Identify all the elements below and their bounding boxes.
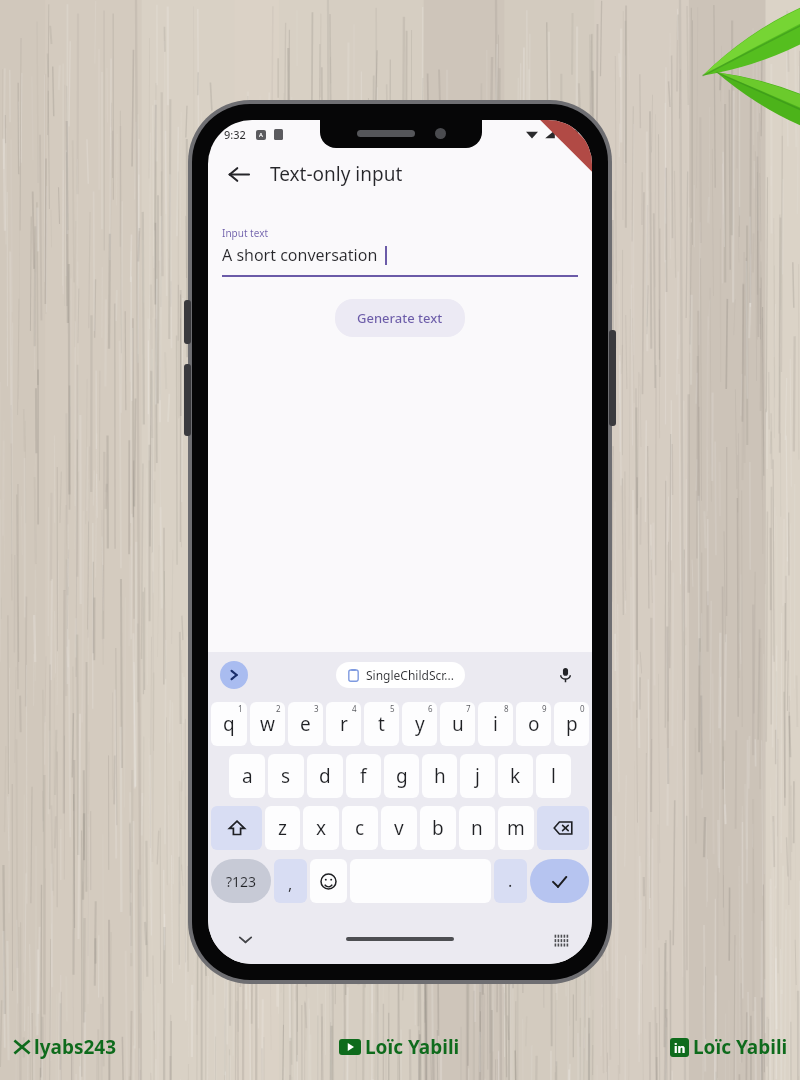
staticText: g xyxy=(396,763,408,789)
staticText: Loïc Yabili xyxy=(693,1034,788,1060)
staticText: o xyxy=(528,711,540,737)
button[interactable]: SingleChildScr... xyxy=(336,662,465,688)
staticText: t xyxy=(378,711,385,737)
staticText: x xyxy=(316,815,327,841)
staticText: s xyxy=(281,763,291,789)
staticText: Input text xyxy=(222,226,269,240)
staticText: A xyxy=(259,131,263,139)
staticText: c xyxy=(355,815,365,841)
button[interactable]: Done xyxy=(530,859,589,903)
button[interactable]: 5 xyxy=(364,702,399,746)
button[interactable]: Shift xyxy=(211,806,262,850)
staticText: q xyxy=(223,711,235,737)
button[interactable]: s xyxy=(268,754,304,798)
button[interactable]: Change keyboard xyxy=(548,926,574,952)
button[interactable]: More suggestions xyxy=(220,661,248,689)
button[interactable]: 2 xyxy=(250,702,285,746)
button[interactable]: Backspace xyxy=(537,806,589,850)
staticText: u xyxy=(452,711,464,737)
staticText: 9 xyxy=(542,703,547,714)
staticText: n xyxy=(471,815,483,841)
staticText: y xyxy=(415,711,425,737)
staticText: e xyxy=(300,711,311,737)
button[interactable]: Voice input xyxy=(552,662,578,688)
staticText: j xyxy=(475,763,480,789)
button[interactable]: f xyxy=(346,754,381,798)
staticText: 8 xyxy=(504,703,509,714)
button[interactable]: , xyxy=(274,859,307,903)
staticText: Text-only input xyxy=(270,161,403,187)
staticText: z xyxy=(278,815,287,841)
button[interactable]: z xyxy=(265,806,300,850)
button[interactable]: a xyxy=(229,754,265,798)
staticText: k xyxy=(510,763,521,789)
button[interactable]: 8 xyxy=(478,702,513,746)
staticText: Loïc Yabili xyxy=(365,1034,460,1060)
staticText: b xyxy=(432,815,444,841)
button[interactable]: Generate text xyxy=(335,299,465,337)
staticText: 1 xyxy=(238,703,243,714)
staticText: r xyxy=(340,711,348,737)
staticText: lyabs243 xyxy=(34,1034,117,1060)
staticText: 0 xyxy=(580,703,585,714)
staticText: d xyxy=(319,763,331,789)
staticText: i xyxy=(493,711,498,737)
staticText: 3 xyxy=(314,703,319,714)
staticText: 6 xyxy=(428,703,433,714)
button[interactable]: g xyxy=(384,754,419,798)
button[interactable]: n xyxy=(459,806,495,850)
button[interactable]: 6 xyxy=(402,702,437,746)
button[interactable]: b xyxy=(420,806,456,850)
staticText: 9:32 xyxy=(224,127,246,142)
button[interactable]: h xyxy=(422,754,457,798)
button[interactable]: Back xyxy=(216,152,260,196)
button[interactable]: l xyxy=(536,754,571,798)
staticText: w xyxy=(260,711,275,737)
staticText: m xyxy=(507,815,525,841)
staticText: v xyxy=(394,815,404,841)
button[interactable]: c xyxy=(342,806,378,850)
staticText: A short conversation xyxy=(222,244,378,266)
button[interactable]: 3 xyxy=(288,702,323,746)
staticText: h xyxy=(434,763,446,789)
staticText: . xyxy=(508,870,513,892)
staticText: SingleChildScr... xyxy=(366,667,454,683)
staticText: 2 xyxy=(276,703,281,714)
button[interactable]: Emoji xyxy=(310,859,347,903)
staticText: ?123 xyxy=(226,872,257,891)
button[interactable]: ?123 xyxy=(211,859,271,903)
button[interactable]: j xyxy=(460,754,495,798)
button[interactable]: 1 xyxy=(211,702,247,746)
staticText: , xyxy=(288,873,293,895)
button[interactable]: k xyxy=(498,754,533,798)
button[interactable]: m xyxy=(498,806,534,850)
button[interactable]: Hide keyboard xyxy=(230,924,260,954)
staticText: l xyxy=(551,763,556,789)
staticText: a xyxy=(242,763,253,789)
button[interactable]: d xyxy=(307,754,343,798)
staticText: 5 xyxy=(390,703,395,714)
staticText: f xyxy=(360,763,367,789)
staticText: 4 xyxy=(352,703,357,714)
button[interactable]: . xyxy=(494,859,527,903)
button[interactable]: x xyxy=(303,806,339,850)
button[interactable]: 4 xyxy=(326,702,361,746)
staticText: p xyxy=(566,711,578,737)
button[interactable]: v xyxy=(381,806,417,850)
staticText: 7 xyxy=(466,703,471,714)
button[interactable]: 0 xyxy=(554,702,589,746)
button[interactable]: 9 xyxy=(516,702,551,746)
staticText: Generate text xyxy=(357,309,443,327)
button[interactable]: 7 xyxy=(440,702,475,746)
staticText: in xyxy=(674,1040,686,1056)
